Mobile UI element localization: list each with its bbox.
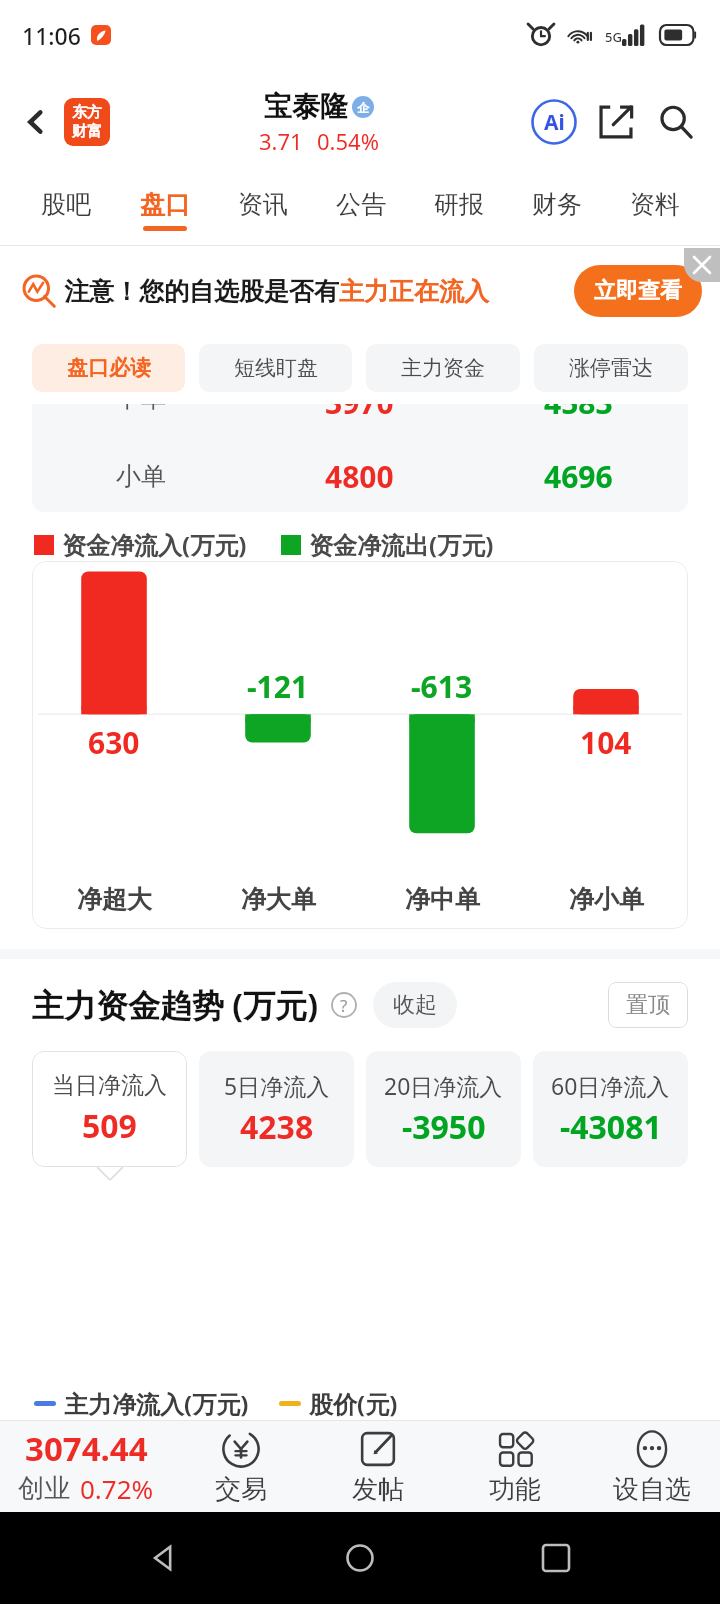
staticText: 0.54%: [317, 126, 379, 156]
button[interactable]: Home: [328, 1526, 392, 1590]
staticText: 630: [88, 722, 140, 763]
button[interactable]: 资料: [606, 174, 704, 246]
staticText: 20日净流入: [384, 1070, 503, 1101]
staticText: 11:06: [22, 20, 81, 51]
staticText: 主力正在流入: [339, 276, 489, 307]
staticText: 股吧: [41, 189, 91, 220]
button[interactable]: 研报: [410, 174, 508, 246]
button[interactable]: Close: [684, 248, 720, 282]
staticText: Ai: [544, 108, 565, 137]
button[interactable]: 公告: [312, 174, 410, 246]
staticText: 资金净流入(万元): [62, 528, 247, 561]
staticText: 3074.44: [25, 1426, 148, 1471]
button[interactable]: Back: [14, 100, 58, 144]
button[interactable]: 当日净流入: [32, 1051, 187, 1167]
button[interactable]: 功能: [446, 1420, 583, 1512]
staticText: 研报: [434, 189, 484, 220]
staticText: 收起: [393, 991, 437, 1019]
staticText: 短线盯盘: [234, 355, 318, 381]
staticText: 发帖: [352, 1473, 404, 1506]
button[interactable]: Help: [329, 990, 359, 1020]
staticText: 净中单: [405, 884, 480, 915]
staticText: 净大单: [241, 884, 316, 915]
staticText: -43081: [560, 1105, 662, 1149]
staticText: 当日净流入: [52, 1071, 167, 1100]
staticText: 设自选: [613, 1473, 691, 1506]
button[interactable]: 设自选: [583, 1420, 720, 1512]
staticText: 主力资金: [401, 355, 485, 381]
button[interactable]: 财务: [508, 174, 606, 246]
button[interactable]: 立即查看: [574, 265, 702, 317]
staticText: 盘口: [140, 189, 190, 220]
staticText: 中单: [116, 404, 166, 414]
staticText: 0.72%: [80, 1471, 154, 1506]
staticText: 公告: [336, 189, 386, 220]
button[interactable]: 注意！您的自选股是否有: [22, 246, 702, 336]
button[interactable]: 股吧: [16, 174, 115, 246]
button[interactable]: 短线盯盘: [199, 344, 352, 392]
staticText: 交易: [215, 1473, 267, 1506]
button[interactable]: 盘口必读: [32, 344, 185, 392]
button[interactable]: 收起: [373, 982, 457, 1028]
staticText: 3970: [325, 404, 394, 414]
staticText: 小单: [116, 461, 166, 492]
staticText: 财务: [532, 189, 582, 220]
staticText: 宝泰隆: [264, 89, 348, 124]
staticText: 104: [580, 722, 632, 763]
staticText: 4583: [544, 404, 613, 414]
staticText: 60日净流入: [551, 1070, 670, 1101]
button[interactable]: Share: [590, 96, 642, 148]
button[interactable]: 20日净流入: [366, 1051, 521, 1167]
button[interactable]: 3074.44: [0, 1420, 172, 1512]
staticText: 4238: [240, 1105, 314, 1149]
staticText: 净超大: [77, 884, 152, 915]
staticText: 净小单: [569, 884, 644, 915]
button[interactable]: Search: [650, 96, 702, 148]
staticText: 509: [82, 1104, 137, 1148]
button[interactable]: Back: [132, 1526, 196, 1590]
staticText: 企: [357, 100, 369, 115]
staticText: 4696: [544, 456, 613, 497]
staticText: 涨停雷达: [569, 355, 653, 381]
staticText: 功能: [489, 1473, 541, 1506]
staticText: 主力净流入(万元): [64, 1387, 249, 1420]
button[interactable]: 资讯: [214, 174, 312, 246]
staticText: 创业: [18, 1472, 70, 1505]
staticText: 资料: [630, 189, 680, 220]
button[interactable]: 5日净流入: [199, 1051, 354, 1167]
staticText: 资讯: [238, 189, 288, 220]
button[interactable]: 东方: [64, 98, 110, 146]
button[interactable]: AI assistant: [528, 96, 580, 148]
staticText: -121: [247, 666, 309, 707]
staticText: 4800: [325, 456, 394, 497]
button[interactable]: 交易: [172, 1420, 309, 1512]
staticText: 资金净流出(万元): [309, 528, 494, 561]
button[interactable]: 涨停雷达: [534, 344, 688, 392]
staticText: 5G: [605, 28, 622, 46]
button[interactable]: 发帖: [309, 1420, 446, 1512]
staticText: ?: [340, 994, 348, 1017]
staticText: 5日净流入: [224, 1070, 330, 1101]
staticText: 股价(元): [309, 1387, 398, 1420]
staticText: 注意！您的自选股是否有: [64, 276, 339, 307]
staticText: 财富: [72, 122, 102, 141]
button[interactable]: 主力资金: [366, 344, 520, 392]
staticText: 主力资金趋势 (万元): [32, 983, 319, 1027]
staticText: 3.71: [259, 126, 303, 156]
staticText: -613: [411, 666, 473, 707]
button[interactable]: Recents: [524, 1526, 588, 1590]
button[interactable]: 置顶: [608, 982, 688, 1028]
button[interactable]: 60日净流入: [533, 1051, 688, 1167]
staticText: 置顶: [626, 991, 670, 1019]
button[interactable]: 盘口: [115, 174, 214, 246]
staticText: -3950: [402, 1105, 486, 1149]
button[interactable]: 宝泰隆: [259, 89, 379, 156]
staticText: 立即查看: [594, 277, 682, 305]
staticText: 东方: [72, 103, 102, 122]
staticText: 盘口必读: [67, 355, 151, 381]
